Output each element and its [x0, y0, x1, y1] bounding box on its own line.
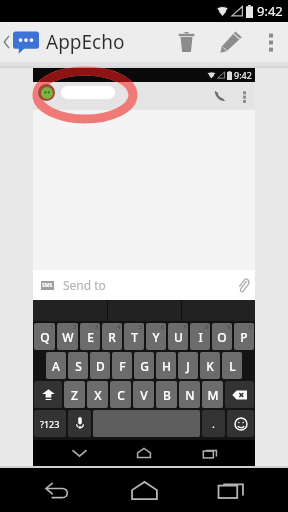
staticText: 4	[117, 323, 121, 331]
button[interactable]: ?123	[34, 410, 66, 437]
button[interactable]: Up, AppEcho	[0, 29, 131, 55]
staticText: Send to	[63, 277, 106, 293]
staticText: 9	[227, 323, 231, 331]
staticText: E	[87, 329, 94, 345]
button[interactable]: Q	[34, 323, 55, 350]
staticText: Y	[152, 329, 160, 345]
staticText: ?123	[40, 418, 60, 430]
button[interactable]: D	[90, 352, 110, 379]
staticText: 9:42	[234, 69, 252, 81]
button[interactable]: SMS	[33, 270, 255, 300]
button[interactable]: A	[46, 352, 66, 379]
button[interactable]: Home	[124, 440, 164, 466]
button[interactable]: Hide keyboard	[59, 440, 99, 466]
button[interactable]: F	[112, 352, 132, 379]
staticText: 0	[249, 323, 253, 331]
staticText: A	[52, 358, 60, 374]
button[interactable]: O	[212, 323, 232, 350]
staticText: H	[162, 358, 171, 374]
staticText: 6	[161, 323, 165, 331]
staticText: B	[163, 387, 171, 403]
button[interactable]: G	[134, 352, 154, 379]
staticText: T	[131, 329, 138, 345]
button[interactable]: R	[102, 323, 122, 350]
staticText: C	[117, 387, 125, 403]
staticText: 7	[183, 323, 187, 331]
staticText: U	[174, 329, 183, 345]
staticText: F	[119, 358, 126, 374]
button[interactable]: More options	[233, 82, 255, 110]
staticText: 8	[205, 323, 209, 331]
button[interactable]: E	[80, 323, 100, 350]
staticText: J	[186, 358, 190, 374]
button[interactable]: Home	[114, 468, 174, 512]
staticText: V	[140, 387, 148, 403]
staticText: I	[198, 329, 203, 345]
button[interactable]: Backspace	[225, 381, 254, 408]
button[interactable]: More options	[254, 22, 288, 62]
button[interactable]: Z	[64, 381, 85, 408]
button[interactable]: S	[68, 352, 88, 379]
button[interactable]: Recents	[201, 468, 261, 512]
button[interactable]: Delete	[164, 22, 208, 62]
button[interactable]: W	[57, 323, 78, 350]
button[interactable]: L	[222, 352, 242, 379]
button[interactable]: Emoji	[227, 410, 254, 437]
button[interactable]: Attach	[231, 270, 255, 300]
button[interactable]: Y	[146, 323, 166, 350]
staticText: .	[212, 416, 215, 431]
staticText: 9:42	[257, 2, 283, 20]
staticText: 2	[73, 323, 77, 331]
button[interactable]: C	[110, 381, 131, 408]
button[interactable]: Back	[27, 468, 87, 512]
button[interactable]: K	[200, 352, 220, 379]
button[interactable]: I	[190, 323, 210, 350]
staticText: L	[229, 358, 236, 374]
button[interactable]: U	[168, 323, 188, 350]
staticText: K	[206, 358, 214, 374]
staticText: Q	[40, 329, 50, 345]
staticText: 1	[50, 323, 54, 331]
staticText: 5	[139, 323, 143, 331]
button[interactable]: P	[234, 323, 254, 350]
staticText: G	[140, 358, 149, 374]
button[interactable]: Shift	[34, 381, 62, 408]
button[interactable]: J	[178, 352, 198, 379]
staticText: R	[108, 329, 116, 345]
button[interactable]: Recents	[190, 440, 230, 466]
button[interactable]: B	[156, 381, 177, 408]
staticText: D	[96, 358, 105, 374]
button[interactable]: M	[202, 381, 223, 408]
staticText: Z	[71, 387, 78, 403]
button[interactable]: N	[179, 381, 200, 408]
staticText: S	[75, 358, 82, 374]
button[interactable]: Compose	[208, 22, 254, 62]
staticText: M	[207, 387, 219, 403]
staticText: P	[240, 329, 248, 345]
button[interactable]: H	[156, 352, 176, 379]
button[interactable]: T	[124, 323, 144, 350]
button[interactable]: .	[202, 410, 225, 437]
staticText: SMS	[42, 282, 53, 289]
staticText: N	[185, 387, 195, 403]
button[interactable]: X	[87, 381, 108, 408]
button[interactable]: Voice input	[68, 410, 91, 437]
staticText: W	[62, 329, 74, 345]
button[interactable]: Call	[207, 82, 233, 110]
staticText: AppEcho	[46, 29, 125, 55]
button[interactable]: V	[133, 381, 154, 408]
staticText: X	[94, 387, 102, 403]
staticText: O	[217, 329, 227, 345]
staticText: 3	[95, 323, 99, 331]
